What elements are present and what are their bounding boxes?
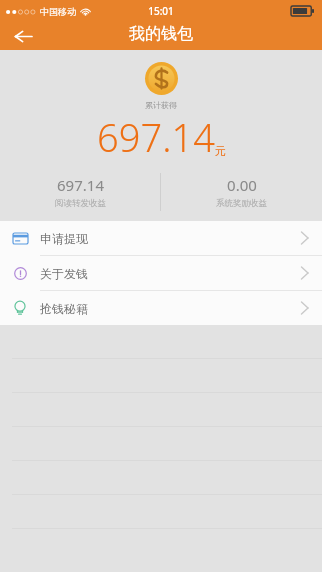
staticText: 抢钱秘籍 [40,301,88,316]
staticText: 0.00 [227,175,257,195]
button[interactable]: 关于发钱 [0,256,322,290]
button[interactable]: 抢钱秘籍 [0,291,322,325]
staticText: 系统奖励收益 [216,198,267,209]
staticText: 元 [215,144,226,158]
button[interactable]: 申请提现 [0,221,322,255]
staticText: 关于发钱 [40,266,88,281]
staticText: 697.14 [97,111,215,163]
button[interactable]: Back [0,22,46,50]
staticText: 697.14 [57,175,104,195]
staticText: 中国移动 [40,6,76,17]
staticText: 累计获得 [145,100,177,110]
staticText: 阅读转发收益 [55,198,106,209]
staticText: 我的钱包 [129,24,193,44]
staticText: 15:01 [148,4,174,18]
staticText: 申请提现 [40,231,88,246]
